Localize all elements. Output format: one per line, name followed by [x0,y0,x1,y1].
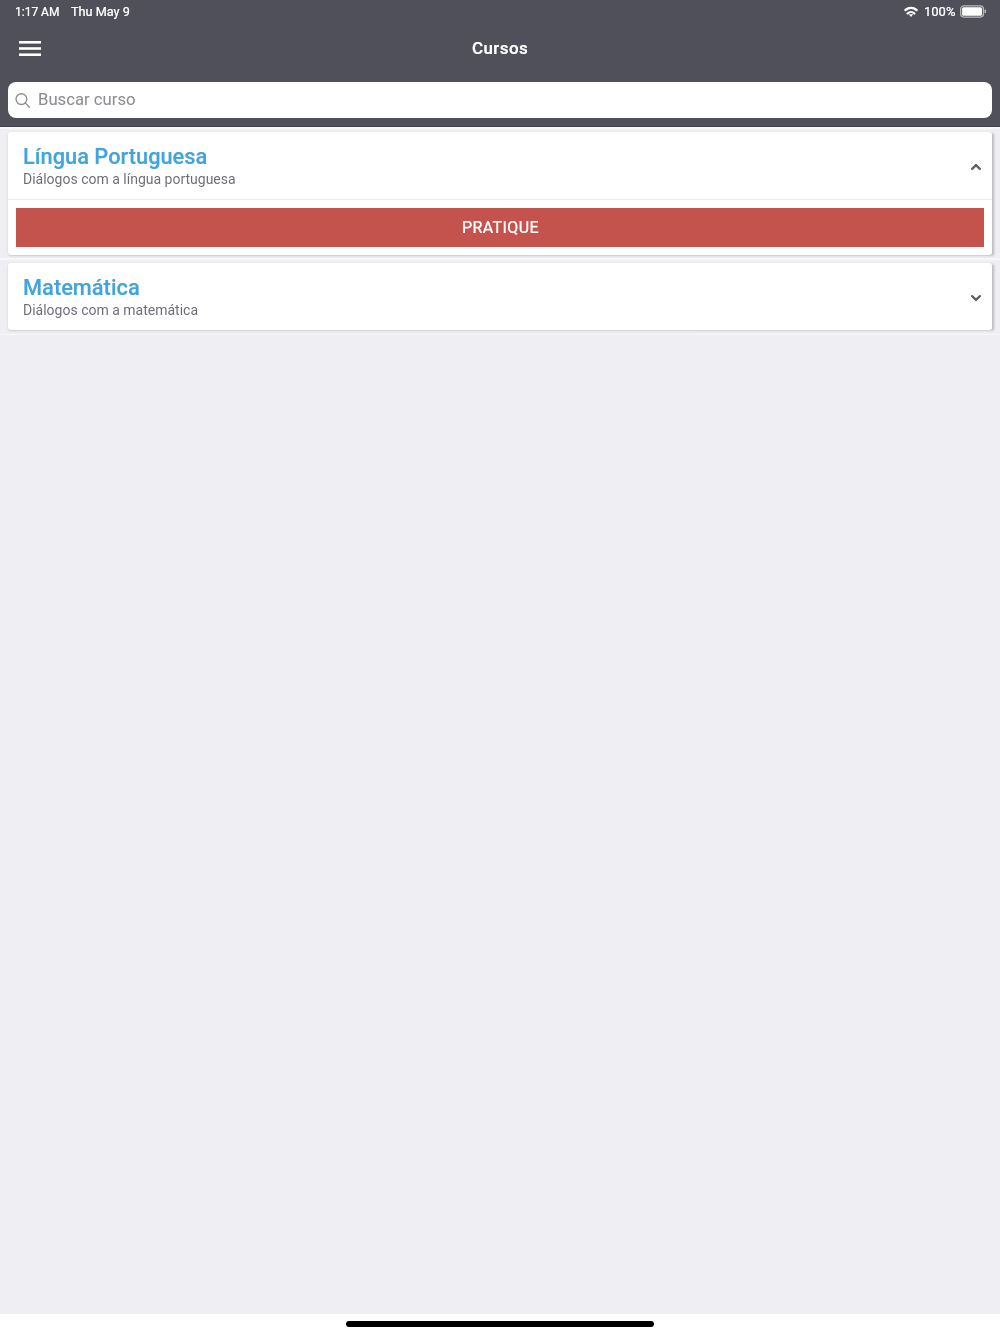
staticText: Cursos [472,38,529,58]
button[interactable]: Buscar curso [8,82,992,118]
button[interactable]: Língua Portuguesa [8,132,992,199]
button[interactable]: Open navigation drawer [8,26,52,70]
staticText: Língua Portuguesa [23,144,208,170]
button[interactable]: Expand course [964,286,988,310]
button[interactable]: Matemática [8,263,992,330]
button[interactable]: Collapse course [964,155,988,179]
staticText: PRATIQUE [462,218,539,237]
staticText: Diálogos com a matemática [23,302,199,318]
staticText: Buscar curso [38,90,136,110]
staticText: Matemática [23,275,140,301]
staticText: 1:17 AM [15,5,60,19]
button[interactable]: PRATIQUE [16,208,984,247]
staticText: Thu May 9 [71,4,130,19]
staticText: 100% [924,4,956,19]
staticText: Diálogos com a língua portuguesa [23,171,236,187]
